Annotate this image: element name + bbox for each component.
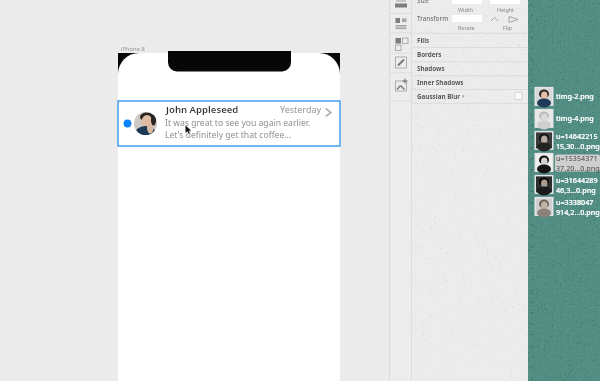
button[interactable]: Shadows bbox=[412, 61, 528, 75]
staticText: Inner Shadows bbox=[417, 78, 464, 87]
button[interactable]: timg-2.png bbox=[533, 88, 600, 108]
button[interactable]: u=14642215 bbox=[533, 132, 600, 152]
staticText: Gaussian Blur bbox=[417, 92, 461, 101]
staticText: Height bbox=[497, 6, 515, 13]
staticText: Fills bbox=[417, 36, 430, 45]
staticText: John Appleseed bbox=[166, 103, 239, 116]
staticText: Transform bbox=[417, 14, 449, 23]
button[interactable]: timg-4.png bbox=[533, 110, 600, 130]
button[interactable]: Inner Shadows bbox=[412, 75, 528, 89]
button[interactable]: Gaussian Blur bbox=[412, 89, 528, 103]
staticText: timg-2.png bbox=[556, 91, 594, 101]
staticText: Flip bbox=[503, 24, 512, 31]
staticText: Yesterday bbox=[280, 103, 322, 115]
staticText: Rotate bbox=[458, 24, 475, 31]
button[interactable]: u=31644289 bbox=[533, 176, 600, 196]
staticText: 914,2…0.png bbox=[556, 207, 600, 217]
staticText: It was great to see you again earlier. bbox=[165, 117, 311, 129]
staticText: u=3338047 bbox=[556, 197, 594, 207]
staticText: Width bbox=[458, 6, 473, 13]
staticText: Size bbox=[417, 0, 429, 5]
staticText: u=31644289 bbox=[556, 175, 598, 185]
staticText: timg-4.png bbox=[556, 113, 594, 123]
staticText: u=15354371 bbox=[556, 153, 598, 163]
staticText: Shadows bbox=[417, 64, 445, 73]
button[interactable]: Fills bbox=[412, 33, 528, 47]
button[interactable]: u=3338047 bbox=[533, 198, 600, 218]
staticText: ▾ bbox=[462, 93, 465, 99]
button[interactable]: Borders bbox=[412, 47, 528, 61]
button[interactable]: u=15354371 bbox=[533, 154, 600, 174]
staticText: Borders bbox=[417, 50, 442, 59]
staticText: 37,20…0.png bbox=[556, 163, 600, 173]
staticText: 46,3…0.png bbox=[556, 185, 596, 195]
staticText: iPhone 8 bbox=[121, 45, 145, 53]
button[interactable]: John Appleseed bbox=[118, 101, 340, 146]
staticText: 15,30…0.png bbox=[556, 141, 600, 151]
staticText: u=14642215 bbox=[556, 131, 598, 141]
staticText: Let's definitely get that coffee… bbox=[165, 129, 292, 141]
